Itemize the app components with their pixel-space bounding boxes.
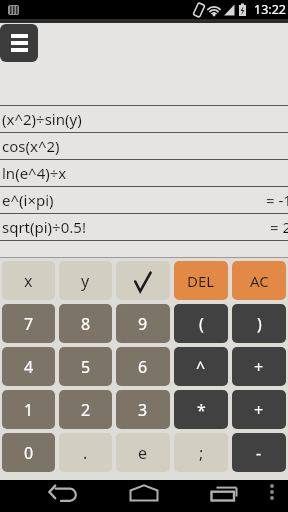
button[interactable]: (x^2)÷sin(y) <box>0 106 288 132</box>
staticText: AC <box>250 271 269 291</box>
button[interactable]: 6 <box>116 347 170 386</box>
button[interactable]: 5 <box>59 347 112 386</box>
staticText: 13:22 <box>254 1 286 18</box>
staticText: ; <box>199 442 204 464</box>
staticText: 2 <box>81 399 91 421</box>
button[interactable]: 9 <box>116 304 170 343</box>
button[interactable]: e^(i×pi) <box>0 187 288 213</box>
staticText: ( <box>199 313 204 335</box>
button[interactable]: AC <box>232 261 286 300</box>
button[interactable] <box>192 480 288 512</box>
button[interactable]: 1 <box>2 390 55 429</box>
button[interactable]: 8 <box>59 304 112 343</box>
staticText: - <box>256 442 262 464</box>
button[interactable]: + <box>232 390 286 429</box>
staticText: ) <box>257 313 262 335</box>
button[interactable] <box>0 24 38 62</box>
staticText: 0 <box>24 442 34 464</box>
staticText: e <box>138 442 148 464</box>
staticText: + <box>254 399 264 421</box>
button[interactable]: DEL <box>174 261 228 300</box>
button[interactable]: cos(x^2) <box>0 133 288 159</box>
staticText: 5 <box>81 356 91 378</box>
staticText: sqrt(pi)÷0.5! <box>2 217 86 237</box>
staticText: cos(x^2) <box>2 136 60 156</box>
staticText: + <box>254 356 264 378</box>
button[interactable]: ; <box>174 433 228 472</box>
button[interactable] <box>0 480 96 512</box>
button[interactable]: 7 <box>2 304 55 343</box>
button[interactable]: y <box>59 261 112 300</box>
staticText: 9 <box>138 313 148 335</box>
button[interactable]: ( <box>174 304 228 343</box>
staticText: (x^2)÷sin(y) <box>2 109 82 129</box>
button[interactable] <box>96 480 192 512</box>
button[interactable]: x <box>2 261 55 300</box>
button[interactable]: - <box>232 433 286 472</box>
button[interactable]: 4 <box>2 347 55 386</box>
staticText: = -1 <box>266 190 288 210</box>
staticText: 7 <box>24 313 34 335</box>
button[interactable] <box>116 261 170 300</box>
staticText: x <box>24 270 33 292</box>
staticText: 3 <box>138 399 148 421</box>
button[interactable]: ln(e^4)÷x <box>0 160 288 186</box>
button[interactable]: ^ <box>174 347 228 386</box>
button[interactable]: * <box>174 390 228 429</box>
button[interactable]: sqrt(pi)÷0.5! <box>0 214 288 240</box>
staticText: . <box>83 442 88 464</box>
button[interactable]: + <box>232 347 286 386</box>
button[interactable]: 0 <box>2 433 55 472</box>
staticText: e^(i×pi) <box>2 190 54 210</box>
staticText: 8 <box>81 313 91 335</box>
staticText: * <box>197 399 206 421</box>
staticText: DEL <box>187 271 215 291</box>
button[interactable]: 3 <box>116 390 170 429</box>
staticText: y <box>81 270 90 292</box>
button[interactable]: . <box>59 433 112 472</box>
staticText: 1 <box>24 399 34 421</box>
staticText: ln(e^4)÷x <box>2 163 67 183</box>
staticText: = 2 <box>270 217 288 237</box>
button[interactable]: 2 <box>59 390 112 429</box>
button[interactable]: e <box>116 433 170 472</box>
staticText: 4 <box>24 356 34 378</box>
button[interactable]: ) <box>232 304 286 343</box>
staticText: 6 <box>138 356 148 378</box>
staticText: ^ <box>196 356 206 378</box>
